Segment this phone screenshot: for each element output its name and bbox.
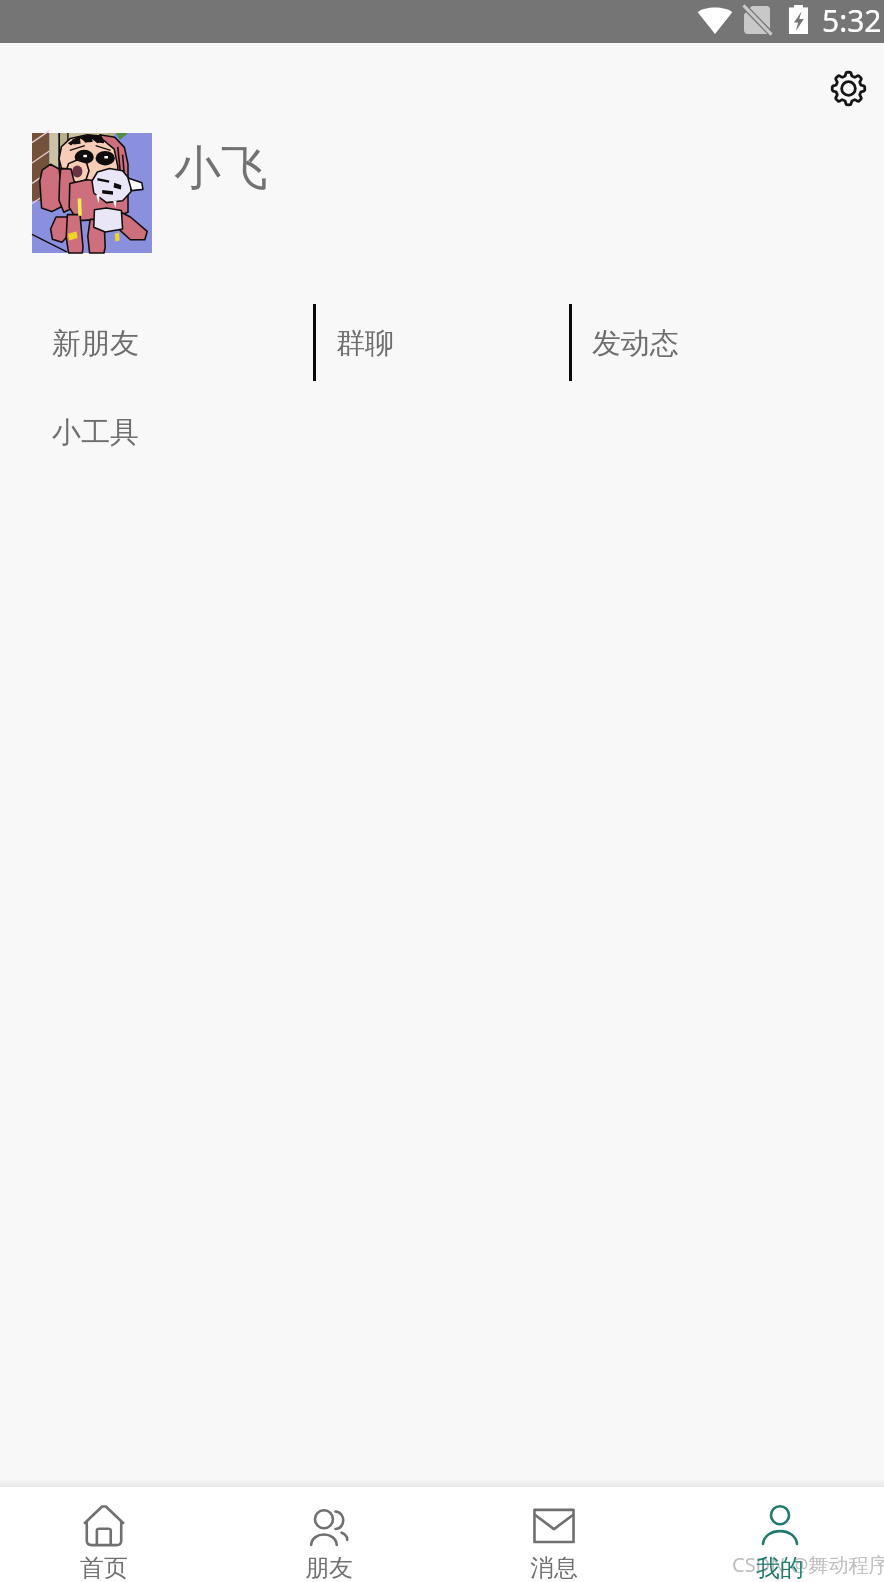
button[interactable]: Settings [816, 56, 880, 120]
button[interactable]: 小工具 [32, 404, 182, 460]
button[interactable]: 发动态 [572, 315, 722, 371]
button[interactable]: 小飞 [0, 133, 884, 253]
staticText: 新朋友 [52, 325, 139, 362]
button[interactable]: 新朋友 [32, 315, 182, 371]
button[interactable]: 朋友 [249, 1487, 409, 1582]
staticText: 5:32 [822, 0, 882, 41]
staticText: 首页 [80, 1553, 128, 1582]
staticText: 群聊 [336, 325, 394, 362]
staticText: 消息 [530, 1553, 578, 1582]
staticText: 小工具 [52, 414, 139, 451]
button[interactable]: 群聊 [316, 315, 466, 371]
staticText: 我的 [756, 1553, 804, 1582]
button[interactable]: 消息 [474, 1487, 634, 1582]
button[interactable]: 我的 [700, 1487, 860, 1582]
button[interactable]: 首页 [24, 1487, 184, 1582]
staticText: 朋友 [305, 1553, 353, 1582]
staticText: CSDN @舞动程序 [732, 1551, 884, 1578]
staticText: 发动态 [592, 325, 679, 362]
staticText: 小飞 [174, 139, 268, 198]
